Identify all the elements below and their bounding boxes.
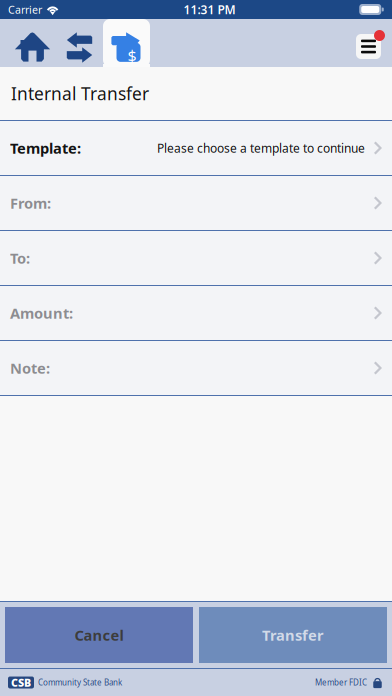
button[interactable]: Cancel (5, 607, 193, 663)
button[interactable]: Amount: (0, 286, 392, 341)
button[interactable]: Menu (356, 30, 385, 59)
staticText: To: (10, 248, 30, 268)
button[interactable]: Note: (0, 341, 392, 396)
staticText: Cancel (74, 625, 123, 645)
staticText: From: (10, 193, 51, 213)
button[interactable]: Template: (0, 121, 392, 176)
staticText: Transfer (262, 625, 324, 645)
staticText: CSB (11, 675, 31, 690)
staticText: $ (127, 45, 136, 66)
button[interactable]: Internal Transfer (103, 19, 150, 67)
staticText: Carrier (8, 2, 42, 17)
staticText: Please choose a template to continue (157, 140, 365, 156)
button[interactable]: Transfer (199, 607, 387, 663)
staticText: Amount: (10, 303, 73, 323)
staticText: Template: (10, 138, 81, 158)
staticText: Note: (10, 358, 50, 378)
button[interactable]: Transfers (56, 19, 103, 67)
button[interactable]: From: (0, 176, 392, 231)
staticText: Internal Transfer (11, 82, 149, 105)
staticText: Member FDIC (315, 677, 367, 688)
button[interactable]: To: (0, 231, 392, 286)
staticText: 11:31 PM (183, 1, 235, 17)
staticText: Community State Bank (38, 677, 122, 688)
button[interactable]: Home (9, 19, 56, 67)
